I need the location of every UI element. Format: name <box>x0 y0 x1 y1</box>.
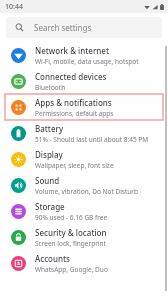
staticText: Security & location <box>35 227 107 238</box>
button[interactable]: Connected devices <box>5 68 163 94</box>
staticText: Sound <box>35 175 60 186</box>
staticText: Display <box>35 149 63 160</box>
button[interactable]: Search <box>6 17 162 38</box>
button[interactable]: Storage <box>5 198 163 224</box>
button[interactable]: Display <box>5 146 163 172</box>
staticText: Permissions, default apps <box>35 109 114 118</box>
staticText: Connected devices <box>35 71 107 82</box>
staticText: Screen lock, fingerprint <box>35 239 106 248</box>
staticText: 10:44 <box>5 2 23 12</box>
other: Search <box>15 23 24 32</box>
staticText: Bluetooth <box>35 83 66 92</box>
staticText: Apps & notifications <box>35 97 112 108</box>
staticText: Wi-Fi, mobile, data usage, hotspot <box>35 57 139 66</box>
staticText: 51% - Should last until about 8:45 PM <box>35 135 149 144</box>
button[interactable]: Accounts <box>5 250 163 276</box>
button[interactable]: Battery <box>5 120 163 146</box>
staticText: WhatsApp, Google, Duo <box>35 265 108 274</box>
staticText: Storage <box>35 201 65 212</box>
staticText: Search settings <box>34 22 92 33</box>
staticText: 90% used - 6.16 GB free <box>35 213 108 222</box>
button[interactable]: Sound <box>5 172 163 198</box>
staticText: Accounts <box>35 253 70 264</box>
staticText: Volume, vibration, Do Not Disturb <box>35 187 139 196</box>
button[interactable]: Network & internet <box>5 42 163 68</box>
staticText: Wallpaper, sleep, font size <box>35 161 114 170</box>
button[interactable]: Security & location <box>5 224 163 250</box>
staticText: Network & internet <box>35 45 110 56</box>
staticText: Battery <box>35 123 64 134</box>
button[interactable]: Apps & notifications <box>5 94 163 120</box>
